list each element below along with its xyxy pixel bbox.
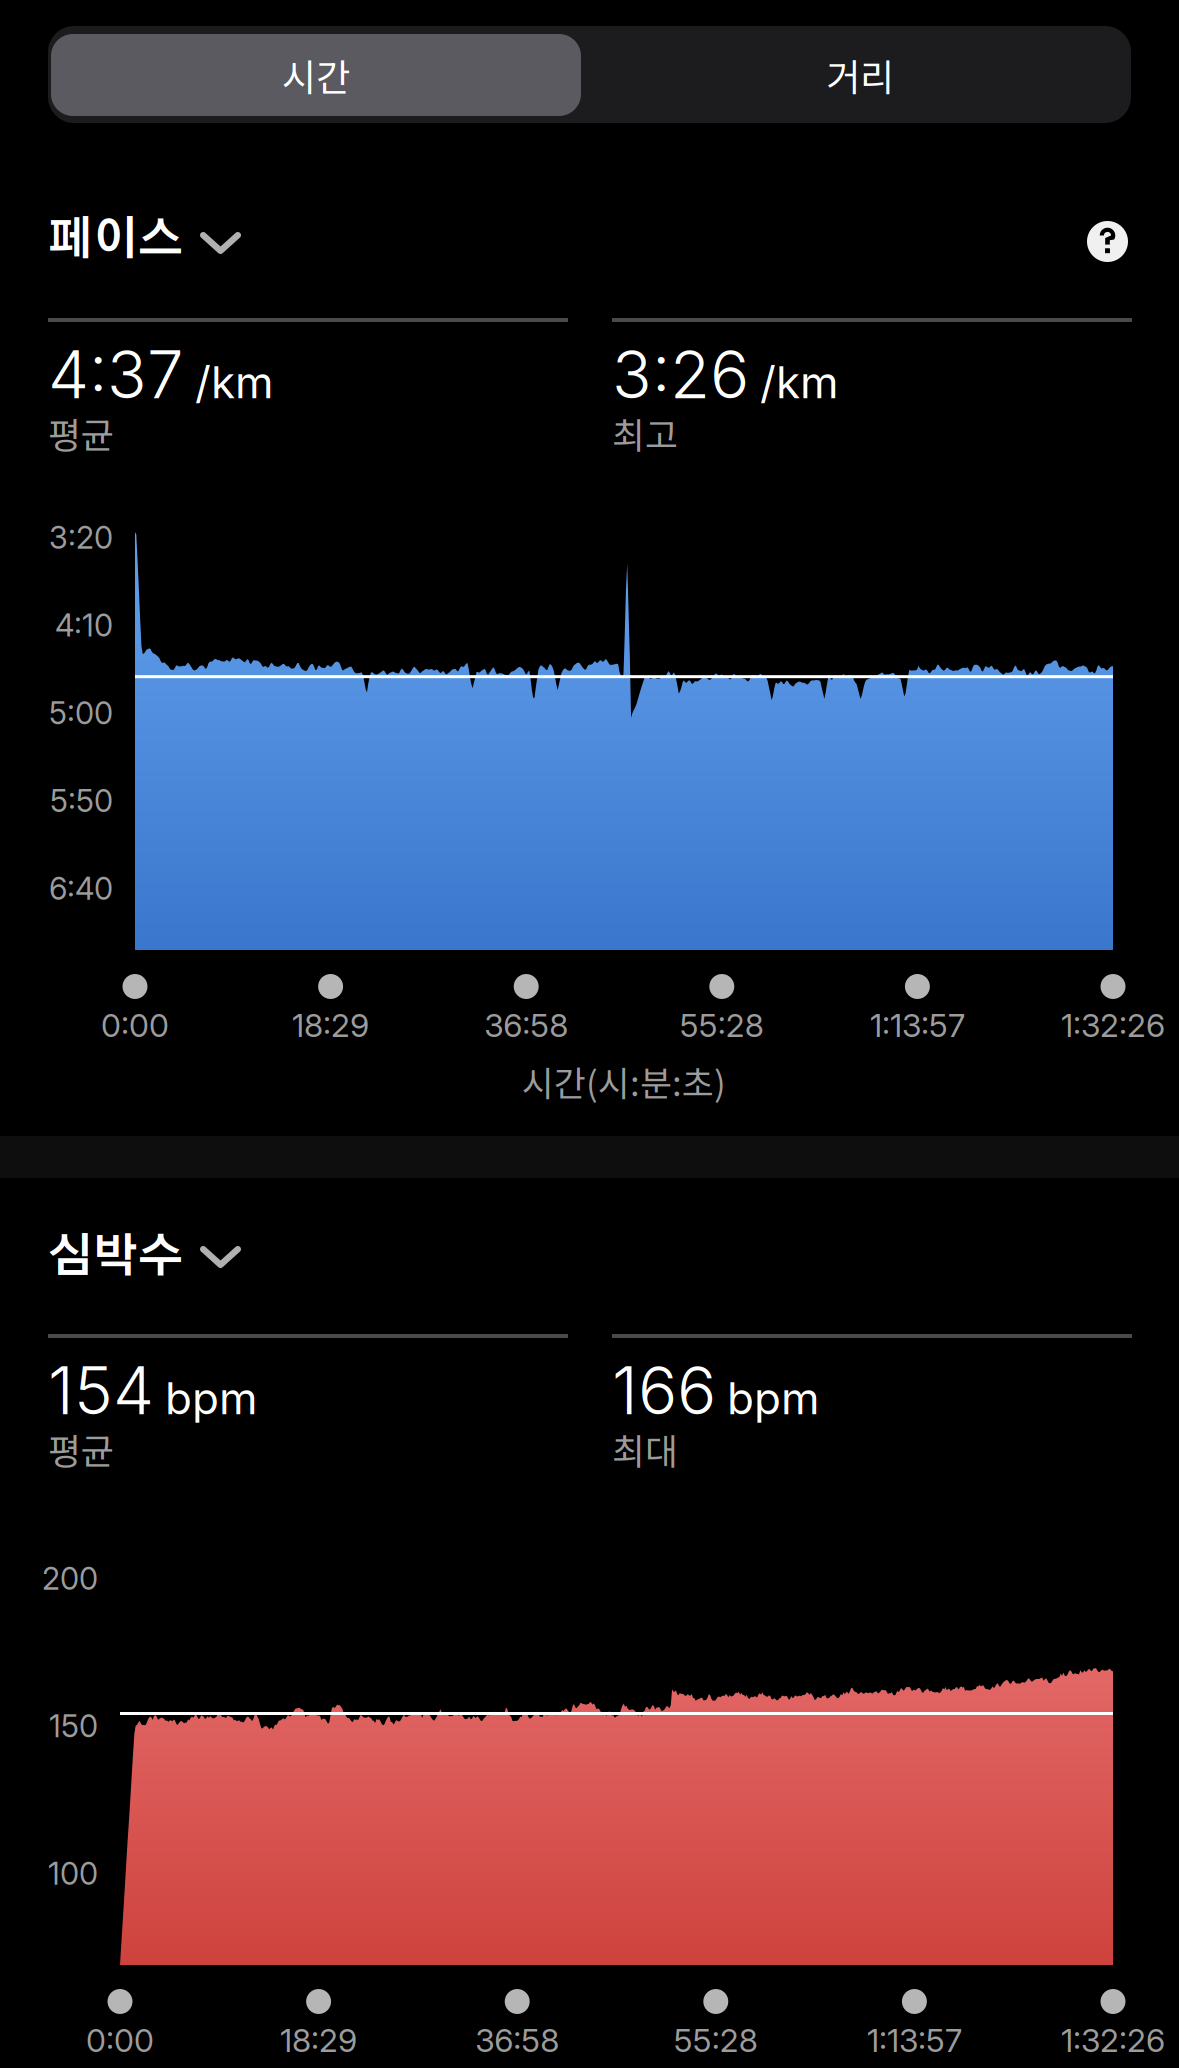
button[interactable]: 심박수 (48, 1222, 253, 1268)
staticText: 150 (49, 1707, 98, 1745)
staticText: 5:50 (50, 782, 113, 819)
staticText: 36:58 (475, 2021, 559, 2060)
staticText: /km (195, 356, 274, 409)
staticText: 거리 (826, 48, 894, 102)
staticText: 5:00 (49, 694, 113, 732)
staticText: 55:28 (680, 1006, 764, 1045)
button[interactable]: 시간 (51, 34, 581, 116)
staticText: 최대 (612, 1423, 678, 1475)
staticText: 1:13:57 (870, 1006, 965, 1045)
staticText: 1:32:26 (1061, 2021, 1165, 2060)
staticText: 18:29 (280, 2021, 357, 2060)
staticText: /km (760, 356, 839, 409)
staticText: 1:32:26 (1061, 1006, 1165, 1045)
staticText: 0:00 (86, 2021, 154, 2060)
staticText: 시간 (282, 48, 350, 102)
staticText: 36:58 (484, 1006, 568, 1045)
staticText: 페이스 (48, 218, 183, 263)
staticText: 평균 (48, 407, 114, 459)
staticText: bpm (727, 1372, 820, 1425)
button[interactable]: 페이스 (48, 205, 253, 251)
staticText: 18:29 (292, 1006, 369, 1045)
staticText: 4:10 (55, 607, 113, 644)
staticText: 154 (48, 1351, 154, 1430)
staticText: 55:28 (674, 2021, 758, 2060)
staticText: 3:20 (49, 519, 113, 556)
staticText: bpm (165, 1372, 258, 1425)
staticText: 200 (42, 1560, 98, 1597)
staticText: 시간(시:분:초) (522, 1056, 726, 1106)
staticText: 3:26 (612, 335, 749, 414)
staticText: 6:40 (49, 870, 113, 907)
staticText: 4:37 (48, 335, 184, 414)
staticText: 166 (612, 1351, 716, 1430)
staticText: 100 (48, 1855, 98, 1892)
staticText: 1:13:57 (867, 2021, 962, 2060)
staticText: 평균 (48, 1423, 114, 1475)
staticText: 최고 (612, 407, 678, 459)
button[interactable]: 도움말 (1087, 221, 1128, 262)
button[interactable]: 거리 (587, 34, 1133, 116)
staticText: 0:00 (101, 1006, 169, 1045)
staticText: 심박수 (48, 1235, 183, 1280)
